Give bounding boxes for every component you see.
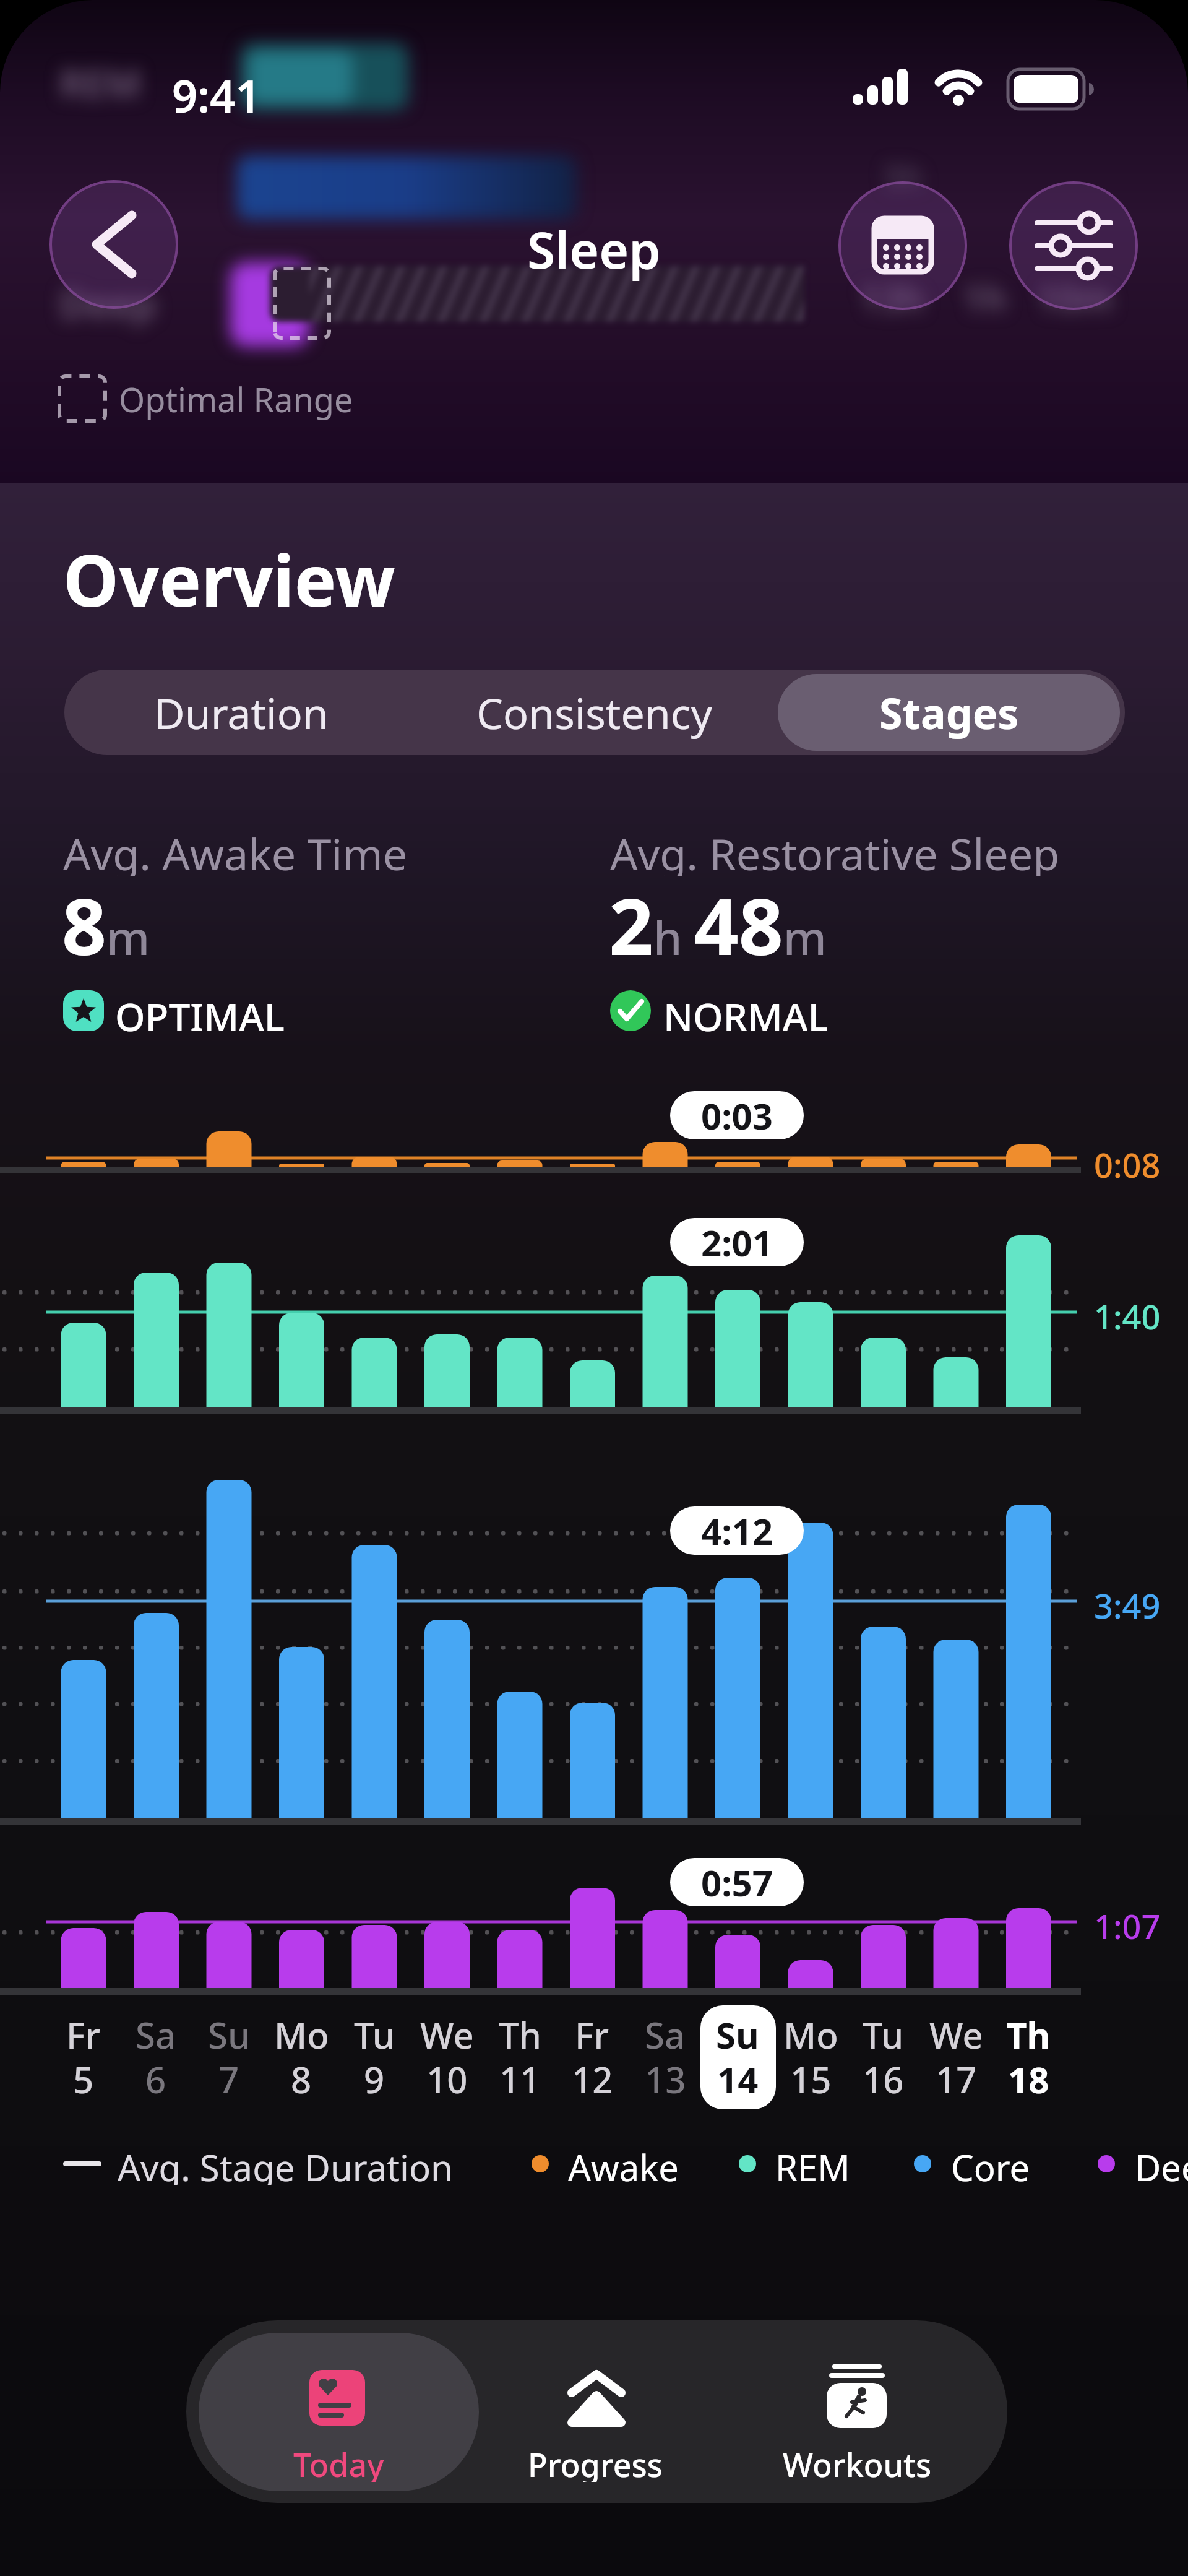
staticText: Tu bbox=[354, 2010, 395, 2054]
staticText: Su bbox=[716, 2010, 759, 2054]
staticText: Core bbox=[951, 2143, 1030, 2185]
button[interactable] bbox=[49, 180, 178, 309]
staticText: Tu bbox=[863, 2010, 904, 2054]
staticText: 1h bbox=[963, 273, 1007, 322]
staticText: Workouts bbox=[783, 2442, 932, 2482]
staticText: 7 bbox=[218, 2055, 239, 2098]
staticText: Mo bbox=[783, 2010, 838, 2054]
button[interactable] bbox=[838, 181, 967, 310]
staticText: Deep bbox=[1135, 2143, 1188, 2185]
staticText: OPTIMAL bbox=[115, 990, 285, 1032]
button[interactable] bbox=[1009, 181, 1138, 310]
staticText: 11 bbox=[499, 2055, 541, 2098]
staticText: Sa bbox=[136, 2010, 176, 2054]
staticText: 5 bbox=[73, 2055, 94, 2098]
staticText: 9:41 bbox=[172, 65, 261, 115]
button[interactable]: Progress bbox=[496, 2442, 694, 2482]
staticText: 0:03 bbox=[701, 1091, 773, 1139]
staticText: We bbox=[420, 2010, 474, 2054]
button[interactable] bbox=[199, 2333, 479, 2491]
staticText: 15 bbox=[790, 2055, 832, 2098]
staticText: 10 bbox=[426, 2055, 468, 2098]
staticText: Avg. Restorative Sleep bbox=[610, 824, 1060, 876]
button[interactable] bbox=[700, 2005, 776, 2109]
staticText: 2:01 bbox=[701, 1218, 773, 1266]
staticText: 16 bbox=[863, 2055, 904, 2098]
staticText: 10m bbox=[1037, 273, 1113, 322]
staticText: 9 bbox=[364, 2055, 385, 2098]
staticText: REM bbox=[59, 57, 142, 106]
staticText: 13 bbox=[645, 2055, 686, 2098]
staticText: Consistency bbox=[476, 684, 713, 741]
staticText: 17 bbox=[936, 2055, 977, 2098]
staticText: Sleep bbox=[527, 214, 661, 282]
button[interactable]: Stages bbox=[778, 674, 1120, 751]
button[interactable]: Consistency bbox=[418, 670, 771, 755]
staticText: 4:12 bbox=[701, 1506, 773, 1555]
staticText: 14 bbox=[717, 2055, 759, 2098]
staticText: REM bbox=[775, 2143, 850, 2185]
staticText: 8m bbox=[62, 871, 150, 970]
staticText: 12 bbox=[572, 2055, 613, 2098]
staticText: We bbox=[929, 2010, 983, 2054]
staticText: 3:49 bbox=[1094, 1583, 1161, 1620]
staticText: Th bbox=[499, 2010, 541, 2054]
staticText: 18 bbox=[1008, 2055, 1049, 2098]
staticText: NORMAL bbox=[663, 990, 829, 1032]
staticText: Su bbox=[208, 2010, 251, 2054]
staticText: Today bbox=[293, 2442, 384, 2482]
staticText: Stages bbox=[879, 684, 1019, 741]
button[interactable] bbox=[778, 674, 1120, 751]
staticText: Mo bbox=[274, 2010, 329, 2054]
staticText: Overview bbox=[63, 531, 395, 624]
staticText: Avg. Stage Duration bbox=[118, 2143, 453, 2185]
staticText: 2h 48m bbox=[609, 871, 827, 970]
button[interactable]: Workouts bbox=[758, 2442, 956, 2482]
staticText: 0:57 bbox=[701, 1858, 773, 1906]
staticText: Sa bbox=[645, 2010, 686, 2054]
staticText: Avg. Awake Time bbox=[63, 824, 408, 876]
staticText: Duration bbox=[154, 684, 329, 741]
staticText: Th bbox=[1006, 2010, 1051, 2054]
staticText: Fr bbox=[575, 2010, 609, 2054]
staticText: 6 bbox=[145, 2055, 166, 2098]
staticText: 8 bbox=[291, 2055, 312, 2098]
staticText: 5h bbox=[885, 155, 923, 197]
staticText: Awake bbox=[568, 2143, 679, 2185]
staticText: Deep bbox=[59, 277, 157, 327]
staticText: Fr bbox=[66, 2010, 101, 2054]
staticText: 13h bbox=[860, 273, 924, 322]
staticText: 1:07 bbox=[1094, 1903, 1161, 1940]
staticText: 0:08 bbox=[1094, 1142, 1161, 1179]
staticText: 1:40 bbox=[1094, 1294, 1161, 1331]
button[interactable]: Today bbox=[239, 2442, 437, 2482]
staticText: Progress bbox=[528, 2442, 663, 2482]
staticText: Optimal Range bbox=[119, 376, 353, 421]
button[interactable]: Duration bbox=[64, 670, 418, 755]
